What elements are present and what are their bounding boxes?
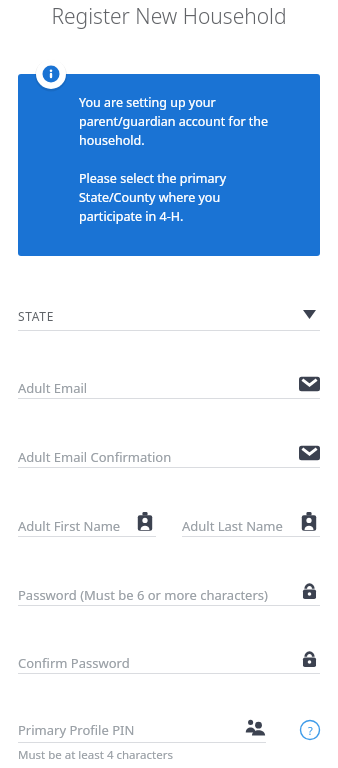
staticText: Register New Household — [0, 2, 338, 31]
button[interactable]: Adult Last Name — [182, 512, 320, 542]
button[interactable]: Password (Must be 6 or more characters) — [18, 581, 320, 611]
staticText: Primary Profile PIN — [18, 721, 135, 739]
button[interactable]: STATE — [0, 296, 338, 332]
staticText: Adult First Name — [18, 517, 121, 535]
other: Information — [35, 58, 67, 90]
button[interactable]: Adult Email Confirmation — [18, 443, 320, 473]
staticText: Confirm Password — [18, 654, 130, 672]
button[interactable]: Adult First Name — [18, 512, 156, 542]
button[interactable]: Help — [299, 719, 321, 741]
staticText: Password (Must be 6 or more characters) — [18, 586, 268, 604]
staticText: STATE — [18, 308, 55, 324]
staticText: Adult Last Name — [182, 517, 283, 535]
staticText: Adult Email Confirmation — [18, 448, 172, 466]
button[interactable]: Confirm Password — [18, 649, 320, 679]
button[interactable]: Adult Email — [18, 374, 320, 404]
staticText: Adult Email — [18, 379, 88, 397]
staticText: You are setting up your parent/guardian … — [79, 94, 269, 225]
staticText: ? — [308, 723, 313, 738]
staticText: Must be at least 4 characters — [18, 747, 173, 763]
button[interactable]: Primary Profile PIN — [18, 718, 266, 748]
